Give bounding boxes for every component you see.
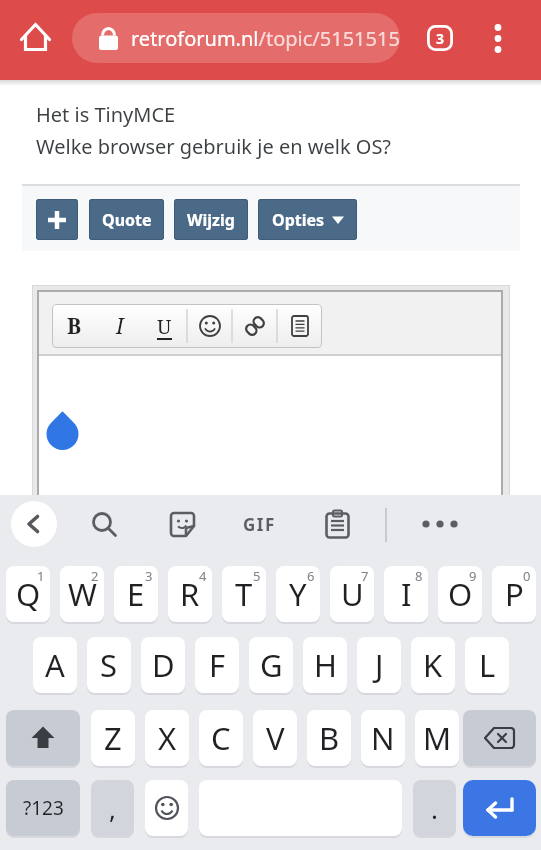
button[interactable]: K: [411, 637, 455, 693]
staticText: W: [68, 573, 97, 615]
button[interactable]: I: [97, 304, 142, 348]
staticText: ?123: [23, 795, 64, 821]
staticText: 5: [253, 567, 261, 585]
staticText: Y: [289, 573, 307, 615]
staticText: 4: [199, 567, 207, 585]
staticText: 7: [361, 567, 369, 585]
button[interactable]: ,: [91, 780, 134, 836]
staticText: GIF: [243, 513, 276, 536]
button[interactable]: Q: [6, 566, 50, 622]
staticText: Wijzig: [187, 209, 235, 231]
button[interactable]: [36, 199, 78, 240]
button[interactable]: V: [253, 710, 297, 766]
button[interactable]: S: [87, 637, 131, 693]
staticText: H: [314, 644, 337, 686]
staticText: Welke browser gebruik je en welk OS?: [36, 133, 392, 160]
staticText: R: [180, 573, 200, 615]
staticText: N: [371, 717, 395, 759]
button[interactable]: Y: [276, 566, 320, 622]
button[interactable]: [463, 780, 536, 836]
button[interactable]: Z: [91, 710, 135, 766]
staticText: ,: [109, 791, 116, 826]
staticText: U: [341, 573, 364, 615]
button[interactable]: ?123: [6, 780, 80, 836]
staticText: T: [235, 573, 253, 615]
button[interactable]: .: [413, 780, 456, 836]
button[interactable]: [91, 511, 118, 538]
button[interactable]: I: [384, 566, 428, 622]
button[interactable]: [325, 510, 350, 539]
button[interactable]: P: [492, 566, 536, 622]
button[interactable]: Quote: [89, 199, 164, 240]
button[interactable]: [145, 780, 188, 836]
staticText: 1: [37, 567, 45, 585]
button[interactable]: [187, 304, 232, 348]
button[interactable]: D: [141, 637, 185, 693]
staticText: U: [157, 313, 172, 340]
button[interactable]: H: [303, 637, 347, 693]
button[interactable]: [11, 501, 57, 547]
button[interactable]: O: [438, 566, 482, 622]
staticText: Het is TinyMCE: [36, 101, 176, 128]
button[interactable]: Wijzig: [174, 199, 248, 240]
staticText: Quote: [102, 209, 152, 231]
staticText: L: [479, 644, 496, 686]
staticText: 8: [415, 567, 423, 585]
button[interactable]: [277, 304, 322, 348]
button[interactable]: [491, 24, 505, 56]
button[interactable]: GIF: [238, 511, 280, 538]
staticText: V: [266, 717, 285, 759]
button[interactable]: B: [52, 304, 97, 348]
button[interactable]: [463, 710, 536, 766]
button[interactable]: G: [249, 637, 293, 693]
button[interactable]: [21, 23, 50, 52]
staticText: 9: [469, 567, 477, 585]
button[interactable]: J: [357, 637, 401, 693]
button[interactable]: U: [142, 304, 187, 348]
staticText: K: [423, 644, 443, 686]
button[interactable]: C: [199, 710, 243, 766]
button[interactable]: [6, 710, 80, 766]
button[interactable]: 3: [427, 25, 453, 51]
button[interactable]: E: [114, 566, 158, 622]
staticText: 3: [436, 29, 445, 48]
staticText: B: [67, 312, 82, 341]
staticText: Z: [104, 717, 122, 759]
button[interactable]: X: [145, 710, 189, 766]
button[interactable]: T: [222, 566, 266, 622]
staticText: .: [431, 791, 438, 826]
button[interactable]: [169, 511, 196, 538]
staticText: A: [45, 644, 65, 686]
staticText: retroforum.nl/topic/51515151: [131, 25, 400, 52]
button[interactable]: L: [465, 637, 509, 693]
staticText: O: [448, 573, 473, 615]
staticText: I: [116, 312, 124, 341]
staticText: C: [211, 717, 231, 759]
button[interactable]: [421, 519, 459, 529]
button[interactable]: Opties: [258, 199, 357, 240]
staticText: J: [375, 644, 384, 686]
staticText: 6: [307, 567, 315, 585]
button[interactable]: B: [307, 710, 351, 766]
button[interactable]: W: [60, 566, 104, 622]
staticText: I: [401, 573, 412, 615]
button[interactable]: [232, 304, 277, 348]
staticText: M: [423, 717, 452, 759]
staticText: D: [152, 644, 175, 686]
button[interactable]: retroforum.nl/topic/51515151: [72, 13, 400, 63]
staticText: B: [319, 717, 340, 759]
button[interactable]: A: [33, 637, 77, 693]
staticText: Opties: [272, 209, 325, 231]
staticText: 3: [145, 567, 153, 585]
staticText: E: [127, 573, 145, 615]
staticText: 2: [91, 567, 99, 585]
button[interactable]: U: [330, 566, 374, 622]
staticText: G: [260, 644, 283, 686]
button[interactable]: F: [195, 637, 239, 693]
button[interactable]: R: [168, 566, 212, 622]
staticText: 0: [523, 567, 531, 585]
button[interactable]: M: [415, 710, 459, 766]
button[interactable]: N: [361, 710, 405, 766]
staticText: S: [100, 644, 118, 686]
